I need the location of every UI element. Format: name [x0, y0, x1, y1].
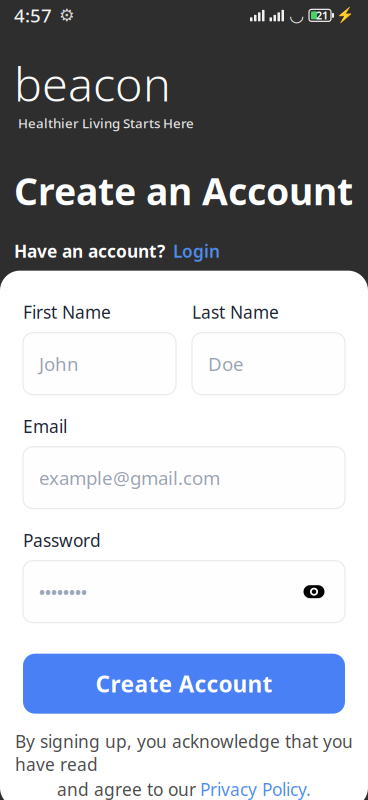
- staticText: example@gmail.com: [39, 465, 220, 490]
- staticText: 21: [316, 8, 328, 22]
- staticText: ⚡: [336, 7, 354, 24]
- staticText: ••••••••: [39, 581, 87, 602]
- staticText: John: [39, 351, 79, 376]
- staticText: Email: [23, 415, 67, 438]
- staticText: Have an account?: [14, 240, 165, 263]
- button[interactable]: Show password: [299, 579, 329, 605]
- staticText: Last Name: [192, 301, 279, 324]
- staticText: ⚙: [59, 5, 75, 25]
- button[interactable]: Login: [173, 240, 220, 263]
- staticText: Password: [23, 529, 101, 552]
- button[interactable]: Privacy Policy.: [200, 778, 311, 800]
- staticText: Login: [173, 240, 220, 263]
- staticText: Create an Account: [14, 166, 353, 216]
- staticText: By signing up, you acknowledge that you …: [15, 730, 353, 776]
- staticText: ◡: [290, 5, 303, 25]
- staticText: First Name: [23, 301, 111, 324]
- staticText: Healthier Living Starts Here: [18, 114, 194, 132]
- button[interactable]: Create Account: [23, 654, 345, 714]
- staticText: Create Account: [95, 669, 272, 699]
- staticText: 4:57: [14, 3, 52, 28]
- staticText: and agree to our: [57, 778, 196, 800]
- staticText: Doe: [208, 351, 244, 376]
- staticText: beacon: [14, 52, 171, 114]
- staticText: Privacy Policy.: [200, 778, 311, 800]
